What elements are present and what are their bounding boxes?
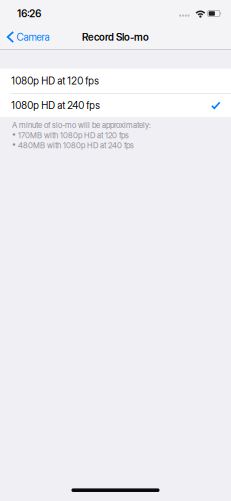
button[interactable]: 1080p HD at 120 fps — [0, 68, 231, 93]
staticText: Record Slo-mo — [82, 31, 149, 43]
button[interactable]: Camera — [0, 25, 54, 49]
staticText: Camera — [16, 31, 49, 43]
staticText: 1080p HD at 240 fps — [11, 99, 100, 111]
staticText: 16:26 — [17, 7, 41, 20]
staticText: 1080p HD at 120 fps — [11, 75, 99, 87]
button[interactable]: 1080p HD at 240 fps — [0, 94, 231, 117]
staticText: • 480MB with 1080p HD at 240 fps — [12, 141, 134, 150]
staticText: • 170MB with 1080p HD at 120 fps — [12, 131, 129, 140]
staticText: A minute of slo-mo will be approximately… — [12, 120, 151, 130]
